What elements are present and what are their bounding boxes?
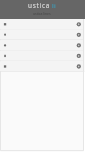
button[interactable]: Route 2 [0, 30, 85, 41]
staticText: ustica [28, 1, 51, 10]
staticText: li [52, 2, 56, 10]
button[interactable]: Route 3 [0, 41, 85, 52]
button[interactable]: Route 4 [0, 52, 85, 63]
button[interactable]: Route 1 [0, 19, 85, 30]
staticText: ustica lines [33, 11, 51, 16]
button[interactable]: Route 5 [0, 63, 85, 74]
